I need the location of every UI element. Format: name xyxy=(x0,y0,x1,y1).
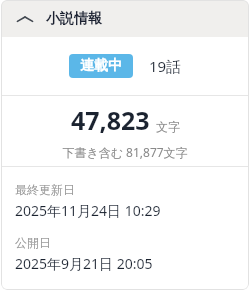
staticText: 19話 xyxy=(149,56,182,76)
staticText: 最終更新日 xyxy=(15,182,75,197)
staticText: 47,823 xyxy=(71,103,150,137)
button[interactable]: Collapse xyxy=(1,0,249,37)
other: Collapse xyxy=(15,9,35,29)
staticText: 2025年9月21日 20:05 xyxy=(15,254,153,273)
staticText: 公開日 xyxy=(15,235,51,250)
staticText: 文字 xyxy=(156,119,180,134)
staticText: 下書き含む 81,877文字 xyxy=(62,144,188,160)
button[interactable]: 連載中 xyxy=(69,54,133,78)
staticText: 2025年11月24日 10:29 xyxy=(15,201,161,220)
staticText: 連載中 xyxy=(80,57,122,75)
staticText: 小説情報 xyxy=(46,10,102,28)
